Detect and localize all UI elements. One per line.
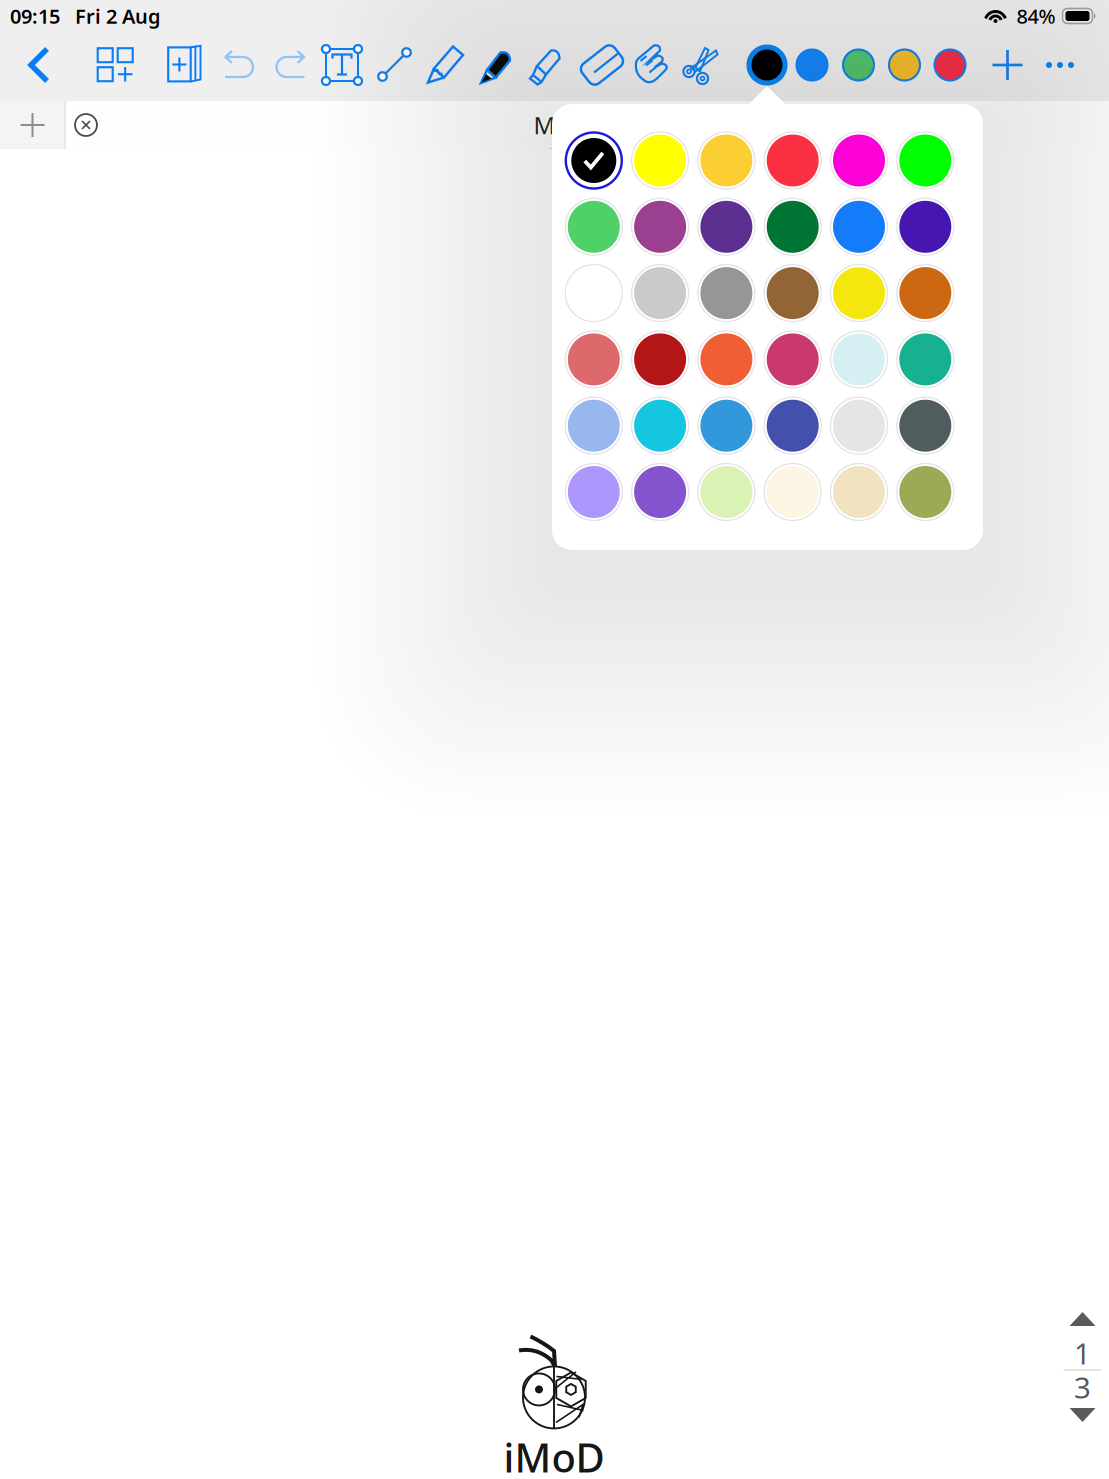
- button[interactable]: More: [1037, 39, 1083, 91]
- button[interactable]: [627, 260, 693, 326]
- button[interactable]: [561, 194, 627, 260]
- button[interactable]: Highlighter: [524, 39, 570, 91]
- button[interactable]: [826, 194, 892, 260]
- button[interactable]: [561, 326, 627, 392]
- button[interactable]: [759, 326, 826, 392]
- staticText: 1: [1074, 1333, 1091, 1372]
- button[interactable]: Pan: [630, 39, 676, 91]
- button[interactable]: [693, 260, 759, 326]
- button[interactable]: [693, 127, 759, 194]
- button[interactable]: [561, 392, 627, 459]
- button[interactable]: New page: [162, 39, 208, 91]
- button[interactable]: Blue: [790, 39, 834, 91]
- button[interactable]: [693, 194, 759, 260]
- button[interactable]: [693, 459, 759, 525]
- button[interactable]: My Notes: [65, 101, 1109, 149]
- button[interactable]: Eraser: [579, 39, 625, 91]
- button[interactable]: [892, 260, 958, 326]
- button[interactable]: Page grid: [92, 39, 138, 91]
- button[interactable]: [627, 392, 693, 459]
- button[interactable]: [693, 326, 759, 392]
- button[interactable]: Redo: [266, 39, 312, 91]
- button[interactable]: Green: [836, 39, 880, 91]
- button[interactable]: [627, 326, 693, 392]
- button[interactable]: [826, 260, 892, 326]
- staticText: Fri 2 Aug: [75, 3, 161, 29]
- button[interactable]: [826, 459, 892, 525]
- button[interactable]: Next page: [1060, 1402, 1104, 1428]
- button[interactable]: [826, 392, 892, 459]
- button[interactable]: [826, 326, 892, 392]
- button[interactable]: [627, 194, 693, 260]
- button[interactable]: [892, 392, 958, 459]
- staticText: 84%: [1016, 3, 1055, 29]
- button[interactable]: [627, 127, 693, 194]
- button[interactable]: [892, 194, 958, 260]
- staticText: iMoD: [503, 1430, 604, 1479]
- button[interactable]: [892, 326, 958, 392]
- button[interactable]: [759, 194, 826, 260]
- button[interactable]: [561, 260, 627, 326]
- button[interactable]: Red: [928, 39, 972, 91]
- button[interactable]: Undo: [217, 39, 263, 91]
- button[interactable]: [561, 127, 627, 194]
- button[interactable]: Cut: [679, 39, 725, 91]
- button[interactable]: [561, 459, 627, 525]
- button[interactable]: Back: [17, 39, 63, 91]
- button[interactable]: Close tab: [66, 103, 106, 147]
- button[interactable]: [627, 459, 693, 525]
- button[interactable]: [693, 392, 759, 459]
- staticText: My Notes: [533, 109, 640, 141]
- button[interactable]: [892, 459, 958, 525]
- staticText: 3: [1074, 1367, 1091, 1406]
- button[interactable]: Yellow: [882, 39, 926, 91]
- button[interactable]: [892, 127, 958, 194]
- button[interactable]: [826, 127, 892, 194]
- button[interactable]: Previous page: [1060, 1306, 1104, 1332]
- button[interactable]: Pen: [473, 39, 519, 91]
- button[interactable]: Line tool: [372, 39, 418, 91]
- button[interactable]: New tab: [0, 101, 65, 149]
- button[interactable]: [759, 260, 826, 326]
- button[interactable]: [759, 127, 826, 194]
- button[interactable]: Add colour: [984, 39, 1030, 91]
- staticText: 09:15: [10, 3, 60, 29]
- button[interactable]: Text tool: [319, 39, 365, 91]
- button[interactable]: [759, 392, 826, 459]
- button[interactable]: Black: [744, 39, 790, 91]
- button[interactable]: [759, 459, 826, 525]
- button[interactable]: Pencil: [423, 39, 469, 91]
